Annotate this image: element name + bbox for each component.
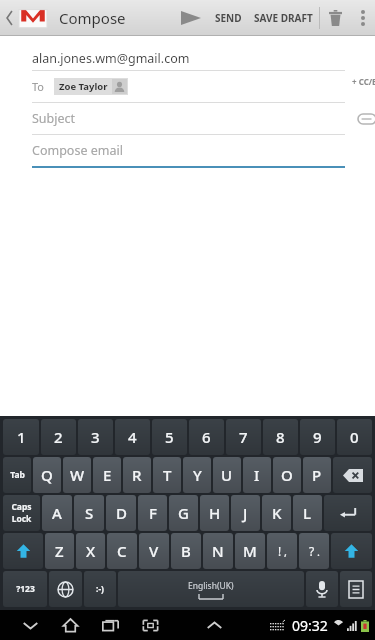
staticText: B [181, 541, 191, 561]
button[interactable]: 3 [78, 419, 113, 455]
button[interactable]: P [303, 457, 331, 493]
button[interactable]: R [123, 457, 151, 493]
button[interactable]: Compose email [32, 135, 345, 166]
button[interactable]: ?123 [3, 571, 47, 607]
staticText: ?123 [16, 583, 35, 595]
button[interactable]: 0 [337, 419, 372, 455]
staticText: + CC/E [352, 76, 375, 87]
button[interactable]: alan.jones.wm@gmail.com [32, 46, 345, 70]
button[interactable]: T [153, 457, 181, 493]
button[interactable]: 8 [263, 419, 298, 455]
button[interactable]: globe [49, 571, 82, 607]
button[interactable]: Discard [320, 10, 351, 26]
button[interactable]: 9 [300, 419, 335, 455]
staticText: Y [193, 465, 202, 485]
button[interactable]: Screenshot [130, 610, 170, 640]
button[interactable]: enter [324, 495, 372, 531]
staticText: 7 [239, 427, 248, 447]
staticText: G [178, 503, 189, 523]
staticText: H [209, 503, 221, 523]
button[interactable]: shiftR [331, 533, 372, 569]
button[interactable]: 1 [3, 419, 39, 455]
button[interactable]: bksp [333, 457, 372, 493]
button[interactable]: shiftL [3, 533, 43, 569]
button[interactable]: Expand [194, 610, 234, 640]
staticText: E [103, 465, 112, 485]
button[interactable]: F [138, 495, 167, 531]
button[interactable]: 5 [152, 419, 187, 455]
button[interactable]: 7 [226, 419, 261, 455]
button[interactable]: M [235, 533, 265, 569]
button[interactable]: SEND [209, 11, 248, 25]
staticText: 0 [350, 427, 359, 447]
button[interactable]: :-) [84, 571, 116, 607]
button[interactable]: C [107, 533, 137, 569]
other: Back [6, 11, 13, 25]
staticText: To [32, 79, 45, 94]
button[interactable]: Q [33, 457, 61, 493]
button[interactable]: 2 [41, 419, 76, 455]
staticText: Tab [10, 469, 25, 481]
button[interactable]: W [63, 457, 91, 493]
button[interactable]: X [76, 533, 105, 569]
button[interactable]: I [243, 457, 271, 493]
button[interactable]: Send [173, 11, 209, 25]
staticText: Compose email [32, 142, 123, 159]
button[interactable]: !, [267, 533, 297, 569]
staticText: 4 [128, 427, 137, 447]
button[interactable]: ?. [299, 533, 329, 569]
button[interactable]: L [293, 495, 322, 531]
button[interactable]: E [93, 457, 121, 493]
button[interactable]: menu [340, 571, 372, 607]
button[interactable]: mic [306, 571, 338, 607]
button[interactable]: S [74, 495, 104, 531]
button[interactable]: Back [0, 7, 51, 29]
button[interactable]: O [273, 457, 301, 493]
staticText: K [272, 503, 282, 523]
button[interactable]: Tab [3, 457, 31, 493]
button[interactable]: N [203, 533, 233, 569]
button[interactable]: Y [183, 457, 211, 493]
staticText: P [312, 465, 322, 485]
staticText: S [85, 503, 94, 523]
button[interactable]: B [171, 533, 201, 569]
staticText: 5 [165, 427, 174, 447]
staticText: W [70, 465, 85, 485]
button[interactable]: G [169, 495, 198, 531]
button[interactable]: 6 [189, 419, 224, 455]
button[interactable]: H [200, 495, 229, 531]
button[interactable]: More options [351, 10, 375, 26]
staticText: ? [309, 543, 315, 559]
button[interactable]: + CC/E [352, 76, 375, 87]
staticText: 09:32 [292, 616, 328, 635]
staticText: 9 [313, 427, 322, 447]
button[interactable]: A [42, 495, 72, 531]
staticText: N [212, 541, 224, 561]
button[interactable]: Hide keyboard [10, 610, 50, 640]
staticText: A [52, 503, 62, 523]
button[interactable]: Recent apps [90, 610, 130, 640]
button[interactable]: D [106, 495, 136, 531]
staticText: Z [55, 541, 64, 561]
button[interactable]: Caps Lock [3, 495, 40, 531]
staticText: D [116, 503, 127, 523]
button[interactable]: K [262, 495, 291, 531]
staticText: M [243, 541, 257, 561]
button[interactable]: Home [50, 610, 90, 640]
button[interactable]: space [118, 571, 304, 607]
button[interactable]: 4 [115, 419, 150, 455]
button[interactable]: To [32, 71, 345, 102]
staticText: . [317, 544, 320, 559]
button[interactable]: Attach file [358, 114, 375, 124]
staticText: alan.jones.wm@gmail.com [32, 50, 190, 67]
button[interactable]: U [213, 457, 241, 493]
staticText: English(UK) [188, 580, 234, 592]
button[interactable]: SAVE DRAFT [248, 11, 319, 25]
button[interactable]: V [139, 533, 169, 569]
staticText: O [281, 465, 293, 485]
staticText: Zoe Taylor [59, 80, 108, 93]
staticText: F [149, 503, 157, 523]
button[interactable]: Subject [32, 103, 345, 134]
button[interactable]: J [231, 495, 260, 531]
button[interactable]: Z [45, 533, 74, 569]
